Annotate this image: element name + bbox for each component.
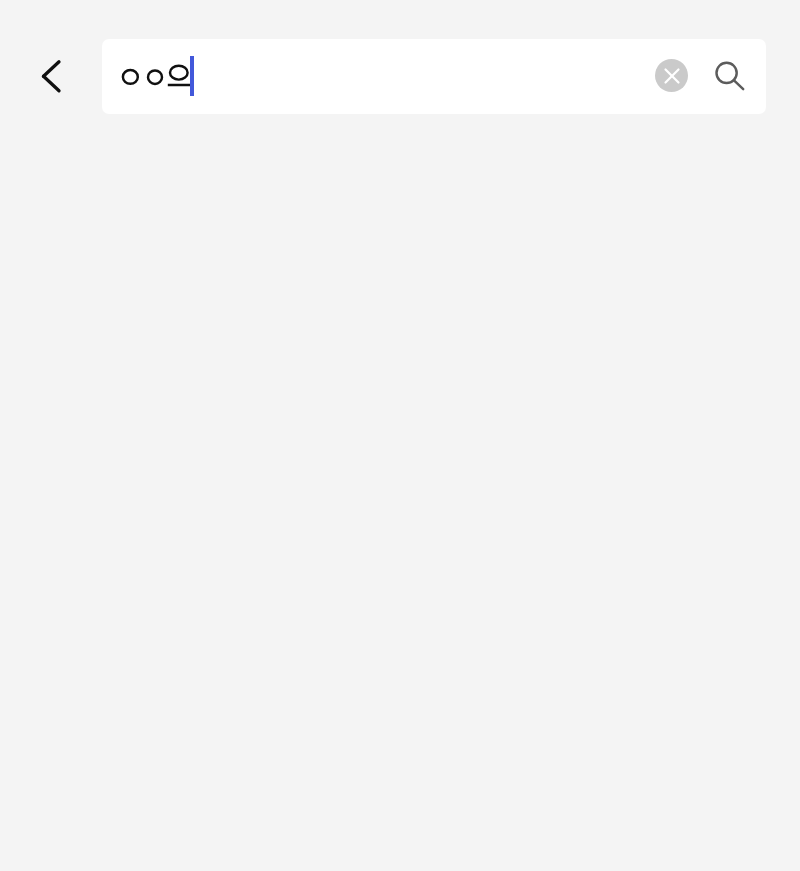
button[interactable]: Search field, ㅇㅇ으: [102, 39, 766, 114]
button[interactable]: Search: [704, 53, 750, 99]
button[interactable]: Clear text: [655, 59, 688, 92]
button[interactable]: Back: [27, 52, 75, 100]
